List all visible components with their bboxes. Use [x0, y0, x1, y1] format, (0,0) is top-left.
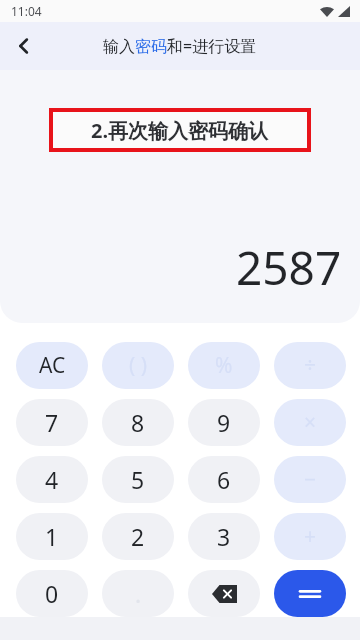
staticText: ×: [304, 408, 317, 437]
staticText: 输入密码和=进行设置: [103, 35, 257, 57]
staticText: 3: [217, 521, 231, 552]
staticText: 0: [45, 578, 59, 609]
button[interactable]: 8: [102, 399, 174, 446]
staticText: 5: [131, 464, 145, 495]
button[interactable]: 2: [102, 513, 174, 560]
staticText: 4: [45, 464, 59, 495]
button[interactable]: 6: [188, 456, 260, 503]
staticText: 7: [45, 407, 59, 438]
staticText: 2587: [236, 236, 342, 299]
button[interactable]: 3: [188, 513, 260, 560]
button[interactable]: −: [274, 456, 346, 503]
button[interactable]: 5: [102, 456, 174, 503]
staticText: 11:04: [11, 3, 42, 19]
staticText: 8: [131, 407, 145, 438]
button[interactable]: 1: [16, 513, 88, 560]
staticText: 2: [131, 521, 145, 552]
button[interactable]: Back: [0, 22, 48, 70]
staticText: AC: [39, 351, 66, 380]
button[interactable]: Backspace: [188, 570, 260, 617]
button[interactable]: +: [274, 513, 346, 560]
staticText: 2.再次输入密码确认: [91, 117, 269, 144]
staticText: 6: [217, 464, 231, 495]
staticText: 9: [217, 407, 231, 438]
button[interactable]: 9: [188, 399, 260, 446]
staticText: +: [304, 522, 317, 551]
button[interactable]: AC: [16, 342, 88, 389]
button[interactable]: ÷: [274, 342, 346, 389]
staticText: %: [215, 351, 233, 380]
button[interactable]: .: [102, 570, 174, 617]
button[interactable]: [274, 570, 346, 617]
button[interactable]: 0: [16, 570, 88, 617]
staticText: ÷: [304, 351, 317, 380]
button[interactable]: ( ): [102, 342, 174, 389]
button[interactable]: 4: [16, 456, 88, 503]
button[interactable]: ×: [274, 399, 346, 446]
button[interactable]: 7: [16, 399, 88, 446]
button[interactable]: %: [188, 342, 260, 389]
staticText: ( ): [129, 351, 148, 380]
staticText: 1: [45, 521, 59, 552]
